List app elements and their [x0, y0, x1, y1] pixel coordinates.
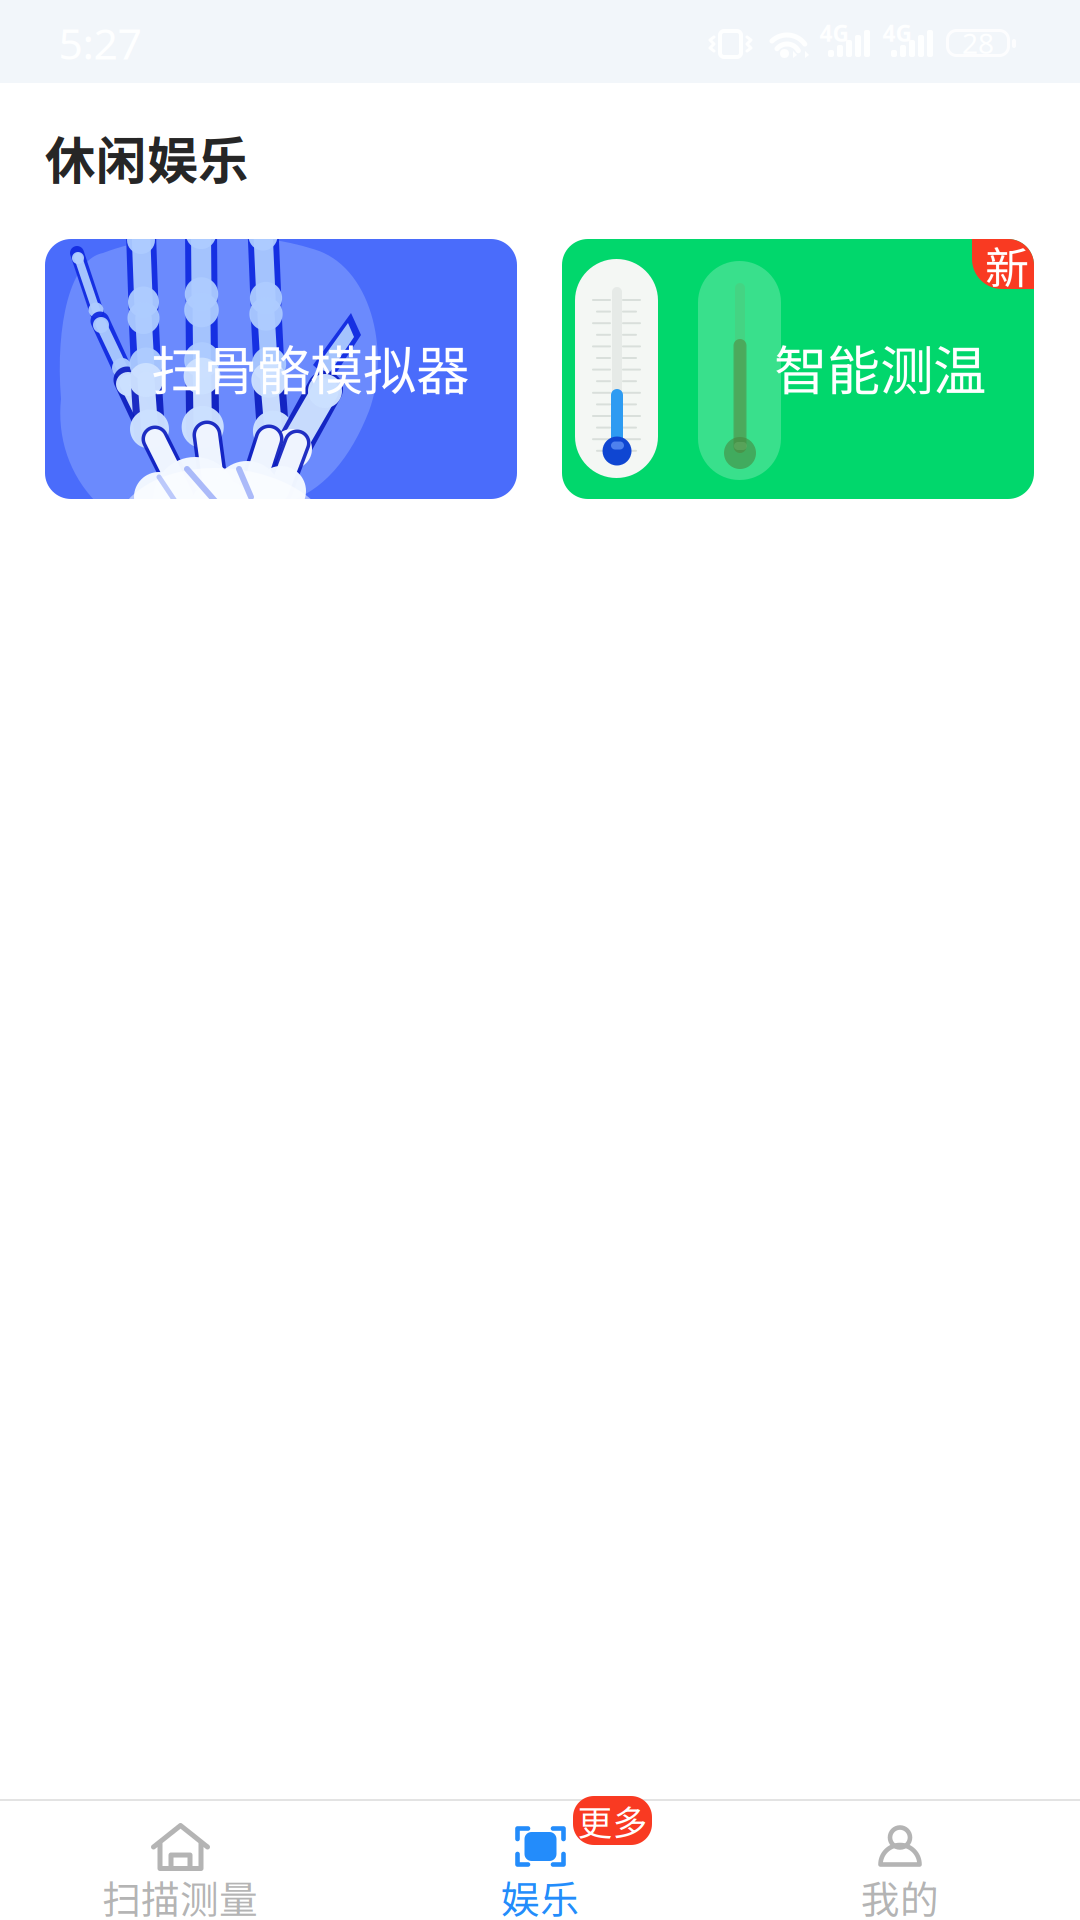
staticText: 28	[962, 24, 994, 62]
button[interactable]: 我的	[720, 1799, 1080, 1920]
staticText: 我的	[861, 1869, 939, 1920]
staticText: 更多	[577, 1795, 647, 1846]
staticText: 扫描测量	[102, 1869, 258, 1920]
staticText: 4G	[819, 18, 848, 48]
staticText: 5:27	[58, 15, 141, 71]
staticText: 新	[985, 233, 1029, 297]
button[interactable]: 扫骨骼模拟器	[45, 239, 517, 499]
button[interactable]: 扫描测量	[0, 1799, 360, 1920]
staticText: 娱乐	[501, 1869, 579, 1920]
staticText: 扫骨骼模拟器	[151, 328, 469, 406]
staticText: 休闲娱乐	[45, 120, 249, 194]
staticText: 智能测温	[774, 328, 986, 406]
button[interactable]: 智能测温	[562, 239, 1034, 499]
button[interactable]: 更多	[360, 1799, 720, 1920]
staticText: 4G	[882, 18, 911, 48]
